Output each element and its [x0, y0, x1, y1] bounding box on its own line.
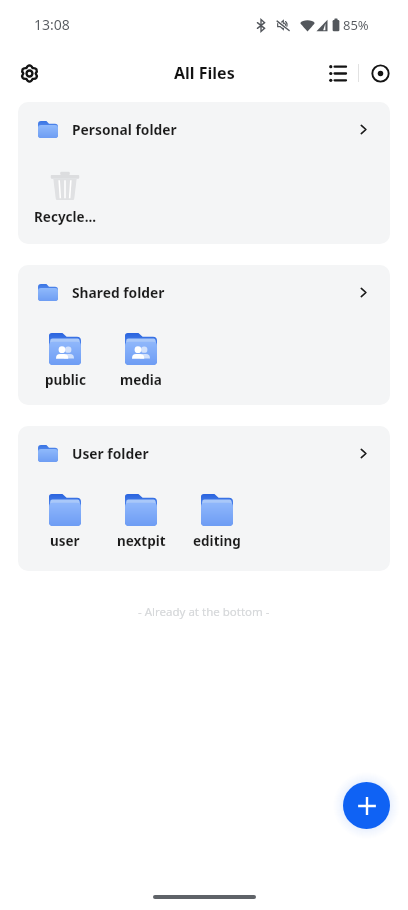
button[interactable]: Personal folder	[18, 102, 390, 156]
button[interactable]: nextpit	[103, 480, 179, 550]
staticText: - Already at the bottom -	[138, 604, 270, 620]
staticText: Personal folder	[72, 120, 177, 139]
staticText: User folder	[72, 444, 149, 463]
staticText: public	[45, 371, 86, 389]
button[interactable]: Record	[364, 57, 396, 89]
button[interactable]: Settings	[9, 53, 49, 93]
staticText: media	[120, 371, 162, 389]
button[interactable]: user	[27, 480, 103, 550]
button[interactable]: public	[27, 319, 103, 389]
staticText: Recycle...	[34, 208, 97, 226]
staticText: Shared folder	[72, 283, 165, 302]
button[interactable]: User folder	[18, 426, 390, 480]
staticText: nextpit	[117, 532, 166, 550]
button[interactable]: List view	[321, 57, 353, 89]
staticText: editing	[193, 532, 241, 550]
button[interactable]: Add	[343, 782, 390, 829]
staticText: All Files	[174, 62, 235, 84]
staticText: user	[50, 532, 80, 550]
button[interactable]: Shared folder	[18, 265, 390, 319]
staticText: 85%	[343, 16, 369, 34]
button[interactable]: editing	[179, 480, 255, 550]
staticText: 13:08	[34, 15, 70, 34]
button[interactable]: media	[103, 319, 179, 389]
button[interactable]: Recycle...	[27, 156, 103, 226]
